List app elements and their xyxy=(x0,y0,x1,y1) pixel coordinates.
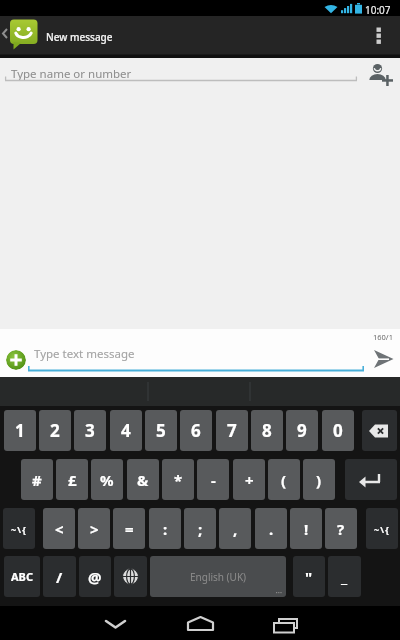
button[interactable] xyxy=(114,556,147,597)
staticText: & xyxy=(137,470,149,490)
button[interactable]: ! xyxy=(290,508,322,549)
button[interactable] xyxy=(6,350,26,370)
staticText: 1 xyxy=(15,419,25,442)
staticText: - xyxy=(211,470,216,490)
staticText: * xyxy=(174,470,183,490)
staticText: Type name or number xyxy=(11,66,132,82)
staticText: 7 xyxy=(227,419,237,442)
button[interactable] xyxy=(175,606,225,640)
staticText: % xyxy=(100,470,114,490)
button[interactable]: ( xyxy=(268,459,300,500)
staticText: = xyxy=(125,519,134,539)
staticText: 6 xyxy=(191,419,201,442)
button[interactable]: ; xyxy=(184,508,216,549)
button[interactable] xyxy=(366,343,400,375)
button[interactable]: ~\{ xyxy=(366,508,398,549)
button[interactable]: 5 xyxy=(145,410,177,451)
staticText: # xyxy=(32,470,42,490)
button[interactable]: : xyxy=(149,508,181,549)
button[interactable] xyxy=(362,410,397,451)
button[interactable]: 3 xyxy=(74,410,106,451)
button[interactable] xyxy=(345,459,397,500)
staticText: ~\{ xyxy=(11,523,28,535)
staticText: , xyxy=(233,519,238,539)
staticText: 0 xyxy=(333,419,343,442)
button[interactable]: 7 xyxy=(216,410,248,451)
button[interactable]: = xyxy=(113,508,145,549)
button[interactable]: > xyxy=(78,508,110,549)
button[interactable]: 4 xyxy=(110,410,142,451)
staticText: 2 xyxy=(50,419,60,442)
staticText: > xyxy=(90,519,99,539)
button[interactable]: " xyxy=(293,556,325,597)
button[interactable]: ~\{ xyxy=(3,508,35,549)
staticText: ! xyxy=(304,519,309,539)
staticText: £ xyxy=(68,470,77,490)
button[interactable]: ABC xyxy=(4,556,40,597)
staticText: English (UK) xyxy=(190,570,247,584)
button[interactable]: + xyxy=(233,459,265,500)
staticText: 8 xyxy=(262,419,272,442)
button[interactable]: * xyxy=(162,459,194,500)
staticText: @ xyxy=(88,567,102,587)
button[interactable]: 8 xyxy=(251,410,283,451)
button[interactable]: % xyxy=(91,459,123,500)
staticText: 9 xyxy=(297,419,307,442)
button[interactable] xyxy=(90,606,140,640)
button[interactable]: £ xyxy=(56,459,88,500)
staticText: < xyxy=(55,519,64,539)
button[interactable]: / xyxy=(43,556,76,597)
button[interactable] xyxy=(362,16,400,58)
button[interactable]: @ xyxy=(79,556,111,597)
button[interactable]: - xyxy=(197,459,229,500)
staticText: ( xyxy=(281,470,287,490)
staticText: ABC xyxy=(11,569,33,584)
button[interactable] xyxy=(0,16,44,58)
button[interactable]: . xyxy=(255,508,287,549)
button[interactable]: , xyxy=(219,508,251,549)
button[interactable] xyxy=(0,58,400,88)
button[interactable]: 9 xyxy=(286,410,318,451)
staticText: New message xyxy=(46,30,113,44)
staticText: Type text message xyxy=(34,346,135,362)
button[interactable]: _ xyxy=(328,556,361,597)
button[interactable]: 1 xyxy=(4,410,36,451)
staticText: 160/1 xyxy=(373,332,393,342)
button[interactable] xyxy=(260,606,310,640)
staticText: 3 xyxy=(85,419,95,442)
button[interactable]: English (UK) xyxy=(150,556,286,597)
staticText: _ xyxy=(341,567,348,587)
button[interactable]: < xyxy=(43,508,75,549)
button[interactable]: 0 xyxy=(322,410,354,451)
staticText: : xyxy=(163,519,168,539)
staticText: / xyxy=(56,567,63,587)
staticText: ) xyxy=(316,470,322,490)
staticText: 5 xyxy=(156,419,166,442)
button[interactable]: # xyxy=(21,459,53,500)
staticText: ; xyxy=(198,519,203,539)
button[interactable]: & xyxy=(127,459,159,500)
button[interactable]: 6 xyxy=(180,410,212,451)
button[interactable]: ) xyxy=(303,459,335,500)
staticText: " xyxy=(305,567,313,587)
staticText: 10:07 xyxy=(365,3,391,17)
staticText: ? xyxy=(337,519,345,539)
button[interactable]: ? xyxy=(325,508,357,549)
button[interactable] xyxy=(30,339,360,373)
staticText: + xyxy=(245,470,254,490)
staticText: . xyxy=(269,519,274,539)
button[interactable]: 2 xyxy=(39,410,71,451)
staticText: 4 xyxy=(121,419,131,442)
staticText: ~\{ xyxy=(374,523,391,535)
